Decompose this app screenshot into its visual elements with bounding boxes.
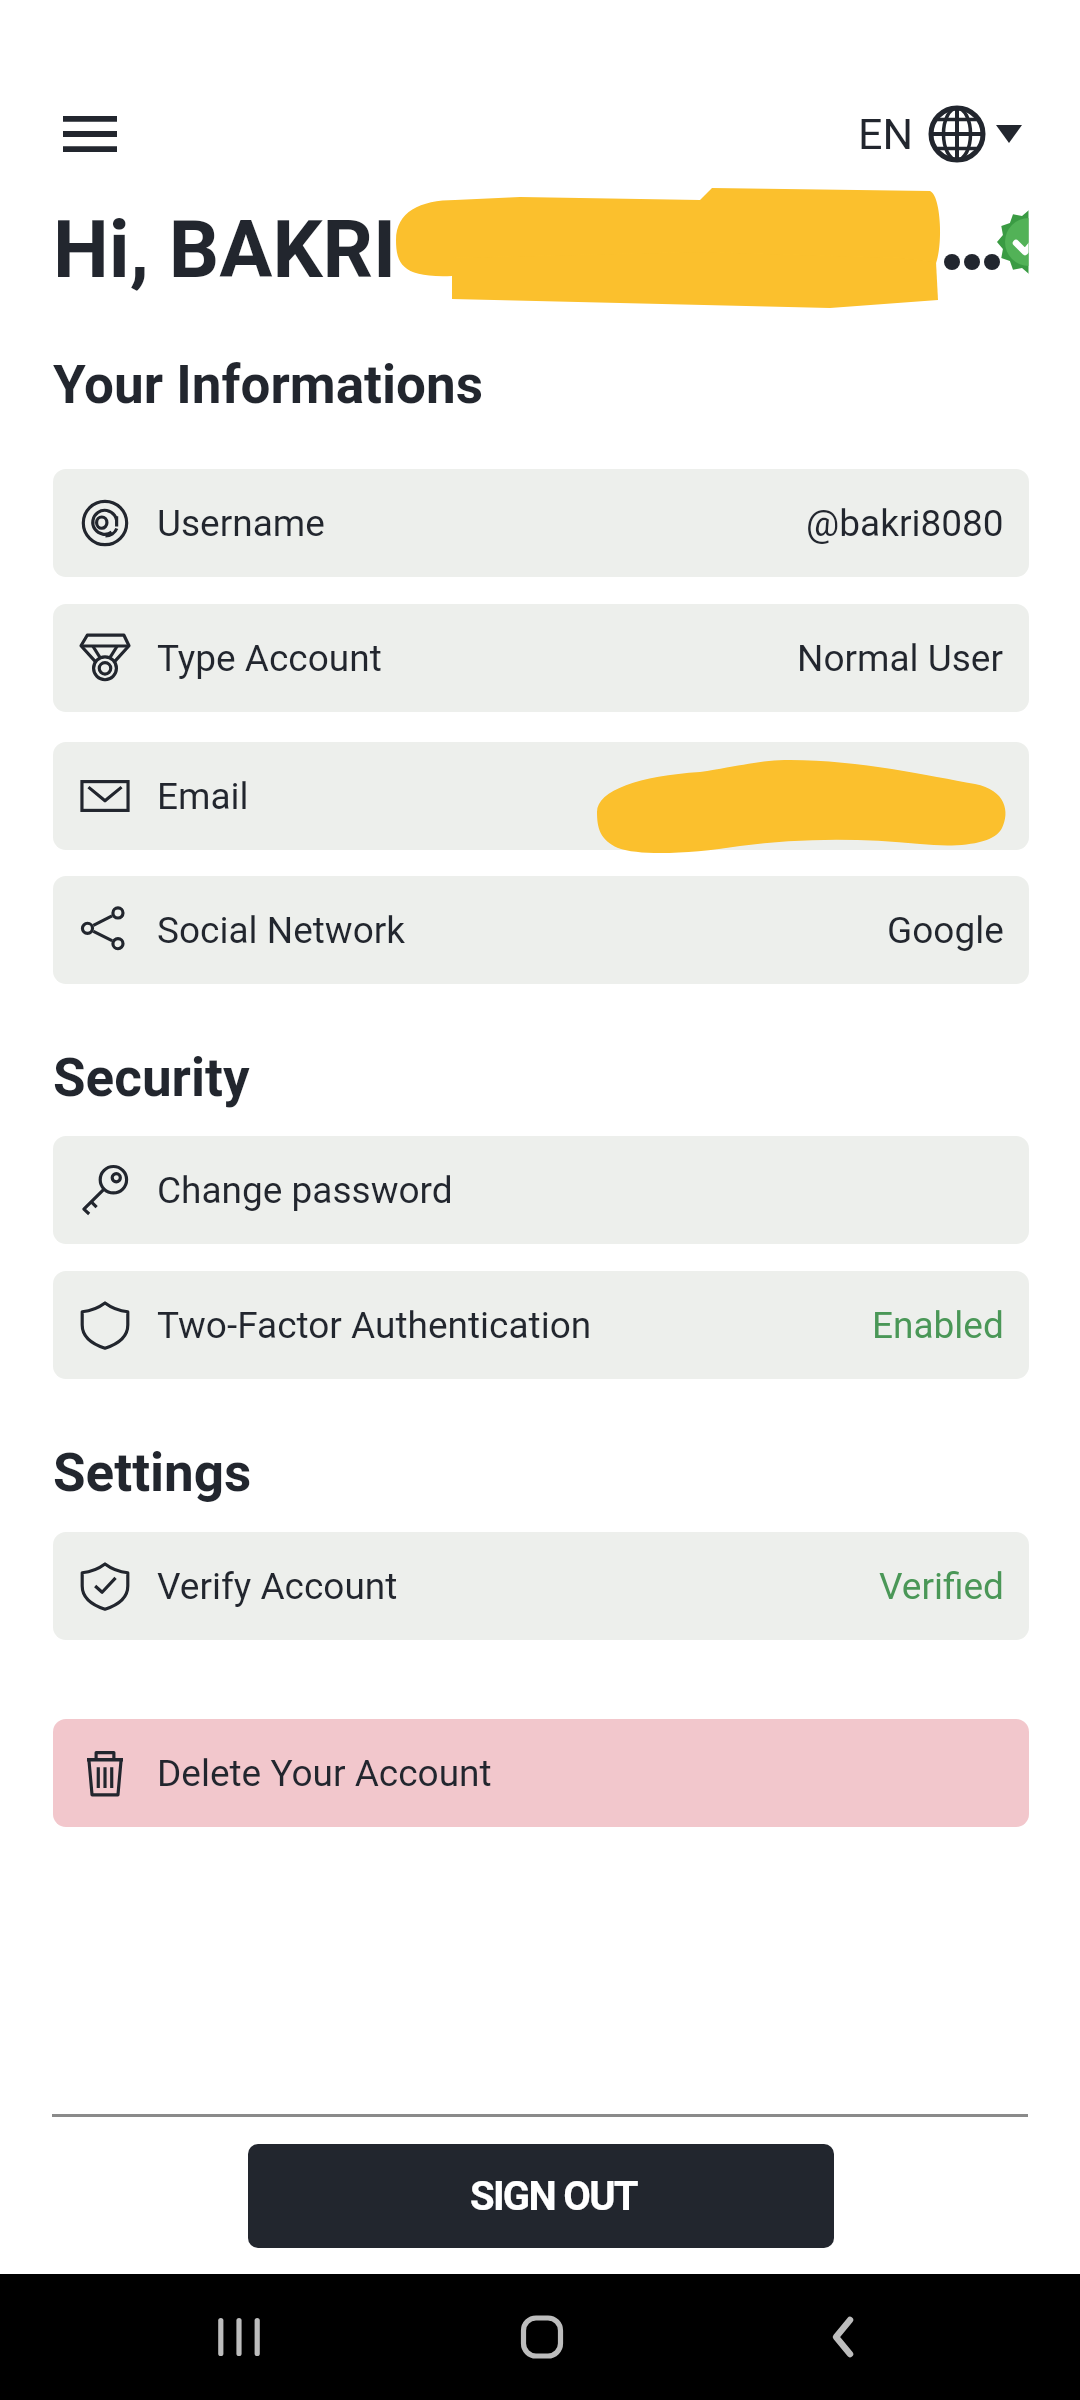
staticText: Google — [887, 909, 1004, 952]
staticText: Verified — [879, 1565, 1004, 1608]
button[interactable]: Open navigation menu — [33, 89, 147, 179]
button[interactable]: Home — [487, 2282, 597, 2392]
staticText: Security — [53, 1047, 250, 1109]
staticText: Your Informations — [53, 354, 483, 416]
button[interactable]: Two-Factor Authentication — [53, 1271, 1029, 1379]
button[interactable]: Email — [53, 742, 1029, 850]
staticText: Two-Factor Authentication — [157, 1304, 592, 1347]
staticText: Settings — [53, 1442, 252, 1504]
staticText: Change password — [157, 1169, 453, 1212]
staticText: EN — [858, 109, 914, 159]
button[interactable]: Change password — [53, 1136, 1029, 1244]
staticText: SIGN OUT — [470, 2173, 637, 2220]
button[interactable]: SIGN OUT — [248, 2144, 834, 2248]
staticText: @bakri8080 — [806, 502, 1004, 545]
staticText: Enabled — [872, 1304, 1004, 1347]
staticText: Verify Account — [157, 1565, 398, 1608]
staticText: Normal User — [797, 637, 1004, 680]
staticText: Social Network — [157, 909, 406, 952]
button[interactable]: Change language — [858, 96, 1022, 172]
staticText: Type Account — [157, 637, 382, 680]
staticText: Username — [157, 502, 325, 545]
staticText: Email — [157, 775, 249, 818]
staticText: Hi, BAKRI — [53, 204, 397, 297]
button[interactable]: Social Network — [53, 876, 1029, 984]
button[interactable]: Verify Account — [53, 1532, 1029, 1640]
button[interactable]: Delete Your Account — [53, 1719, 1029, 1827]
staticText: Delete Your Account — [157, 1752, 492, 1795]
button[interactable]: Recent apps — [184, 2282, 294, 2392]
button[interactable]: Back — [788, 2282, 898, 2392]
button[interactable]: Type Account — [53, 604, 1029, 712]
button[interactable]: Username — [53, 469, 1029, 577]
